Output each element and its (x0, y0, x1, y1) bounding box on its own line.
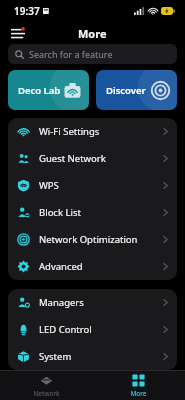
staticText: Block List (39, 206, 81, 219)
staticText: Discover (106, 84, 146, 97)
button[interactable]: LED Control (8, 316, 177, 343)
staticText: Search for a feature (29, 48, 113, 60)
button[interactable]: Deco Lab (8, 70, 89, 110)
button[interactable]: System (8, 343, 177, 370)
button[interactable]: Block List (8, 199, 177, 226)
button[interactable]: Guest Network (8, 145, 177, 172)
staticText: Network Optimization (39, 233, 138, 246)
button[interactable]: WPS (8, 172, 177, 199)
staticText: Deco Lab (18, 84, 61, 97)
button[interactable]: Menu (6, 22, 30, 44)
staticText: Wi-Fi Settings (39, 125, 100, 138)
staticText: Managers (39, 296, 84, 309)
staticText: System (39, 350, 72, 363)
staticText: Guest Network (39, 152, 106, 165)
staticText: LED Control (39, 323, 92, 336)
staticText: Network (33, 389, 60, 398)
button[interactable]: More (92, 371, 185, 400)
button[interactable]: Network Optimization (8, 226, 177, 253)
button[interactable]: Discover (96, 70, 177, 110)
button[interactable]: Wi-Fi Settings (8, 118, 177, 145)
button[interactable]: Search for a feature (8, 44, 177, 64)
button[interactable]: Advanced (8, 253, 177, 280)
staticText: More (78, 26, 107, 41)
staticText: WPS (39, 179, 59, 192)
staticText: 19:37 (14, 4, 40, 18)
staticText: Advanced (39, 260, 83, 273)
staticText: More (130, 389, 147, 398)
button[interactable]: Managers (8, 289, 177, 316)
button[interactable]: Network (0, 371, 92, 400)
